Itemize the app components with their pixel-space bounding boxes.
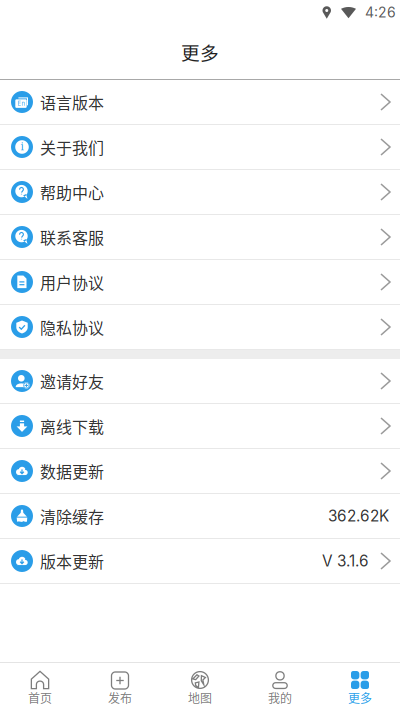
staticText: 4:26 xyxy=(365,4,396,21)
staticText: 首页 xyxy=(28,689,52,706)
button[interactable]: 离线下载 xyxy=(0,404,400,449)
button[interactable]: 首页 xyxy=(0,663,80,710)
staticText: 用户协议 xyxy=(40,270,104,294)
staticText: 更多 xyxy=(181,38,219,65)
staticText: 语言版本 xyxy=(40,90,104,114)
staticText: 我的 xyxy=(268,689,292,706)
staticText: 邀请好友 xyxy=(40,369,104,393)
button[interactable]: 帮助中心 xyxy=(0,170,400,215)
button[interactable]: i xyxy=(0,125,400,170)
staticText: 帮助中心 xyxy=(40,180,104,204)
button[interactable]: 用户协议 xyxy=(0,260,400,305)
staticText: 关于我们 xyxy=(40,135,104,159)
staticText: V 3.1.6 xyxy=(322,552,369,570)
button[interactable]: 发布 xyxy=(80,663,160,710)
button[interactable]: 隐私协议 xyxy=(0,305,400,350)
staticText: 隐私协议 xyxy=(40,315,104,339)
staticText: i xyxy=(20,140,23,153)
staticText: 版本更新 xyxy=(40,549,104,573)
button[interactable]: 联系客服 xyxy=(0,215,400,260)
button[interactable]: 我的 xyxy=(240,663,320,710)
staticText: 更多 xyxy=(348,689,372,706)
staticText: 地图 xyxy=(188,689,212,706)
staticText: 清除缓存 xyxy=(40,504,104,528)
button[interactable]: 邀请好友 xyxy=(0,359,400,404)
button[interactable]: En xyxy=(0,80,400,125)
button[interactable]: 清除缓存 xyxy=(0,494,400,539)
staticText: 离线下载 xyxy=(40,414,104,438)
button[interactable]: 更多 xyxy=(320,663,400,710)
staticText: 联系客服 xyxy=(40,225,104,249)
button[interactable]: 版本更新 xyxy=(0,539,400,584)
staticText: 发布 xyxy=(108,689,132,706)
staticText: 362.62K xyxy=(328,507,389,525)
staticText: En xyxy=(17,100,24,107)
staticText: 数据更新 xyxy=(40,459,104,483)
button[interactable]: 数据更新 xyxy=(0,449,400,494)
button[interactable]: 地图 xyxy=(160,663,240,710)
